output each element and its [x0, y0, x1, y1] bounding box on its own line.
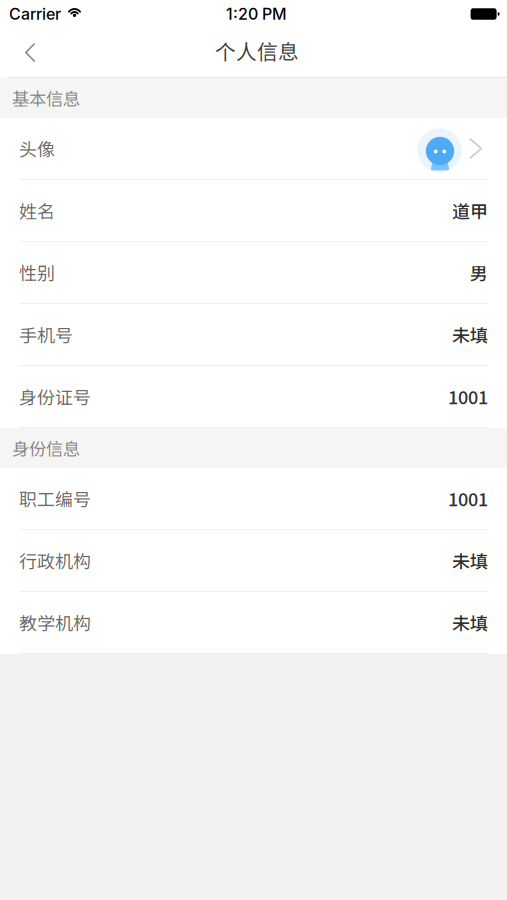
- staticText: 未填: [452, 609, 488, 636]
- staticText: 姓名: [19, 197, 55, 224]
- staticText: 身份信息: [12, 435, 80, 461]
- button[interactable]: 手机号: [0, 304, 507, 366]
- staticText: 个人信息: [215, 35, 299, 65]
- staticText: 男: [470, 259, 488, 286]
- staticText: 道甲: [452, 197, 488, 224]
- staticText: 1:20 PM: [226, 4, 287, 24]
- staticText: 1001: [448, 485, 488, 512]
- staticText: 教学机构: [19, 609, 91, 636]
- staticText: 未填: [452, 547, 488, 574]
- button[interactable]: 职工编号: [0, 468, 507, 530]
- button[interactable]: 头像: [0, 118, 507, 180]
- staticText: 行政机构: [19, 547, 91, 574]
- staticText: Carrier: [9, 4, 61, 24]
- button[interactable]: Back: [7, 30, 53, 78]
- staticText: 1001: [448, 383, 488, 410]
- button[interactable]: 身份证号: [0, 366, 507, 428]
- button[interactable]: 性别: [0, 242, 507, 304]
- staticText: 性别: [19, 259, 55, 286]
- staticText: 头像: [19, 135, 55, 162]
- button[interactable]: 教学机构: [0, 592, 507, 654]
- staticText: 未填: [452, 321, 488, 348]
- staticText: 职工编号: [19, 485, 91, 512]
- button[interactable]: 行政机构: [0, 530, 507, 592]
- staticText: 身份证号: [19, 383, 91, 410]
- button[interactable]: 姓名: [0, 180, 507, 242]
- staticText: 基本信息: [12, 85, 80, 111]
- staticText: 手机号: [19, 321, 73, 348]
